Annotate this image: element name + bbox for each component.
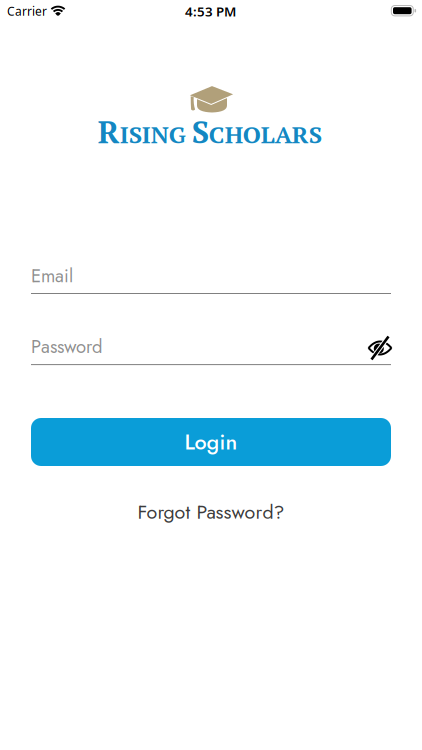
staticText: R bbox=[98, 111, 120, 152]
staticText: Password bbox=[31, 333, 102, 360]
staticText: Email bbox=[31, 262, 73, 289]
staticText: CHOLARS bbox=[209, 118, 322, 150]
staticText: Carrier bbox=[7, 3, 47, 19]
button[interactable]: Forgot Password? bbox=[137, 498, 284, 526]
staticText: Login bbox=[184, 426, 237, 458]
staticText: 4:53 PM bbox=[185, 2, 236, 20]
button[interactable]: Login bbox=[31, 418, 391, 466]
staticText: Forgot Password? bbox=[137, 498, 284, 526]
staticText: ISING bbox=[120, 118, 186, 150]
button[interactable]: Show password bbox=[367, 336, 393, 360]
staticText: S bbox=[192, 111, 209, 152]
